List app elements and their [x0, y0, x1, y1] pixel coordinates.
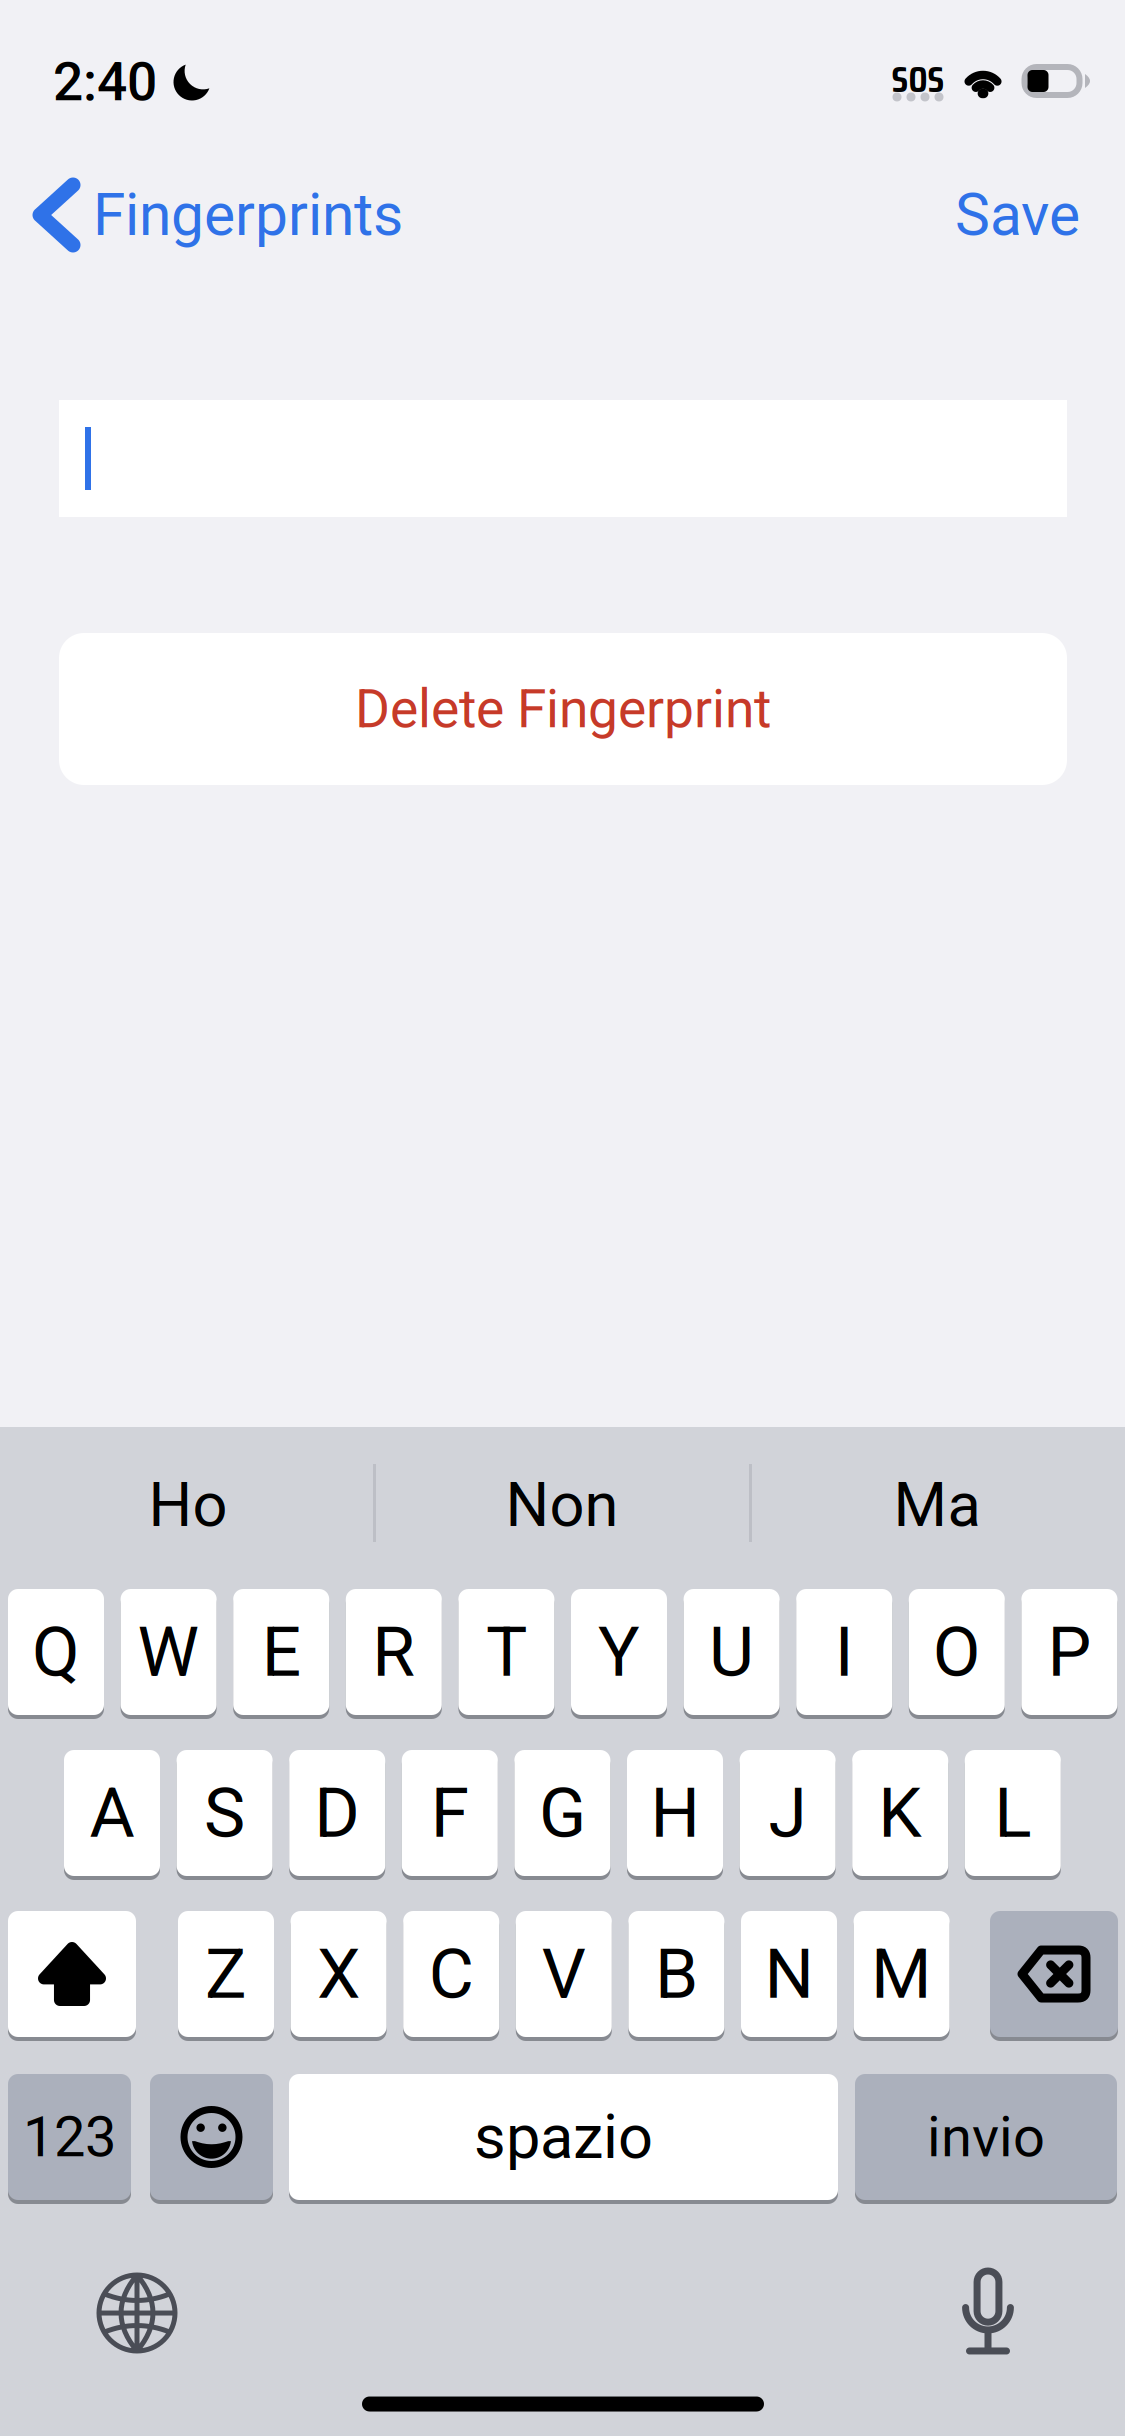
button[interactable]: M: [854, 1909, 950, 2039]
button[interactable]: Emoji: [150, 2072, 273, 2202]
staticText: F: [431, 1772, 469, 1854]
staticText: V: [542, 1933, 586, 2015]
button[interactable]: F: [402, 1748, 498, 1878]
staticText: R: [372, 1611, 415, 1693]
staticText: A: [89, 1772, 134, 1854]
button[interactable]: B: [628, 1909, 724, 2039]
staticText: spazio: [474, 2101, 653, 2173]
staticText: B: [655, 1933, 698, 2015]
button[interactable]: U: [684, 1587, 780, 1717]
button[interactable]: invio: [855, 2072, 1117, 2202]
staticText: P: [1047, 1611, 1091, 1693]
button[interactable]: H: [627, 1748, 723, 1878]
staticText: S: [204, 1772, 245, 1854]
button[interactable]: L: [965, 1748, 1061, 1878]
button[interactable]: S: [177, 1748, 273, 1878]
staticText: Ma: [893, 1469, 980, 1541]
staticText: W: [138, 1611, 200, 1693]
button[interactable]: Fingerprints: [40, 167, 440, 263]
staticText: 123: [23, 2104, 116, 2170]
button[interactable]: E: [233, 1587, 329, 1717]
staticText: E: [262, 1611, 301, 1693]
button[interactable]: Y: [571, 1587, 667, 1717]
button[interactable]: C: [403, 1909, 499, 2039]
staticText: Y: [598, 1611, 640, 1693]
button[interactable]: W: [121, 1587, 217, 1717]
button[interactable]: G: [514, 1748, 610, 1878]
staticText: O: [933, 1611, 981, 1693]
staticText: Z: [205, 1933, 247, 2015]
button[interactable]: Save: [920, 167, 1080, 263]
button[interactable]: R: [346, 1587, 442, 1717]
button[interactable]: O: [909, 1587, 1005, 1717]
staticText: Ho: [148, 1469, 227, 1541]
staticText: X: [317, 1933, 360, 2015]
staticText: 2:40: [53, 51, 157, 113]
button[interactable]: T: [458, 1587, 554, 1717]
button[interactable]: K: [852, 1748, 948, 1878]
staticText: C: [429, 1933, 474, 2015]
button[interactable]: X: [291, 1909, 387, 2039]
staticText: N: [764, 1933, 813, 2015]
staticText: I: [835, 1611, 854, 1693]
button[interactable]: Z: [178, 1909, 274, 2039]
button[interactable]: N: [741, 1909, 837, 2039]
button[interactable]: Ma: [893, 1469, 980, 1541]
button[interactable]: V: [516, 1909, 612, 2039]
staticText: L: [994, 1772, 1031, 1854]
button[interactable]: Q: [8, 1587, 104, 1717]
staticText: Delete Fingerprint: [355, 678, 771, 740]
button[interactable]: Delete Fingerprint: [59, 633, 1067, 785]
staticText: M: [871, 1933, 932, 2015]
button[interactable]: J: [740, 1748, 836, 1878]
staticText: K: [878, 1772, 922, 1854]
button[interactable]: Non: [505, 1469, 618, 1541]
button[interactable]: P: [1021, 1587, 1117, 1717]
button[interactable]: 123: [8, 2072, 131, 2202]
button[interactable]: D: [289, 1748, 385, 1878]
button[interactable]: Ho: [148, 1469, 227, 1541]
button[interactable]: Dictate: [928, 2251, 1048, 2371]
staticText: SOS: [891, 50, 944, 108]
staticText: J: [769, 1772, 807, 1854]
staticText: invio: [927, 2104, 1045, 2170]
button[interactable]: spazio: [289, 2072, 838, 2202]
staticText: H: [650, 1772, 699, 1854]
staticText: G: [539, 1772, 586, 1854]
button[interactable]: A: [64, 1748, 160, 1878]
staticText: Non: [505, 1469, 618, 1541]
button[interactable]: Delete: [990, 1909, 1118, 2039]
button[interactable]: Shift: [8, 1909, 136, 2039]
staticText: U: [709, 1611, 754, 1693]
staticText: T: [486, 1611, 527, 1693]
staticText: Save: [955, 181, 1080, 249]
staticText: Q: [32, 1611, 80, 1693]
staticText: D: [314, 1772, 360, 1854]
button[interactable]: I: [796, 1587, 892, 1717]
button[interactable]: Next keyboard: [77, 2253, 197, 2373]
staticText: Fingerprints: [93, 181, 403, 249]
